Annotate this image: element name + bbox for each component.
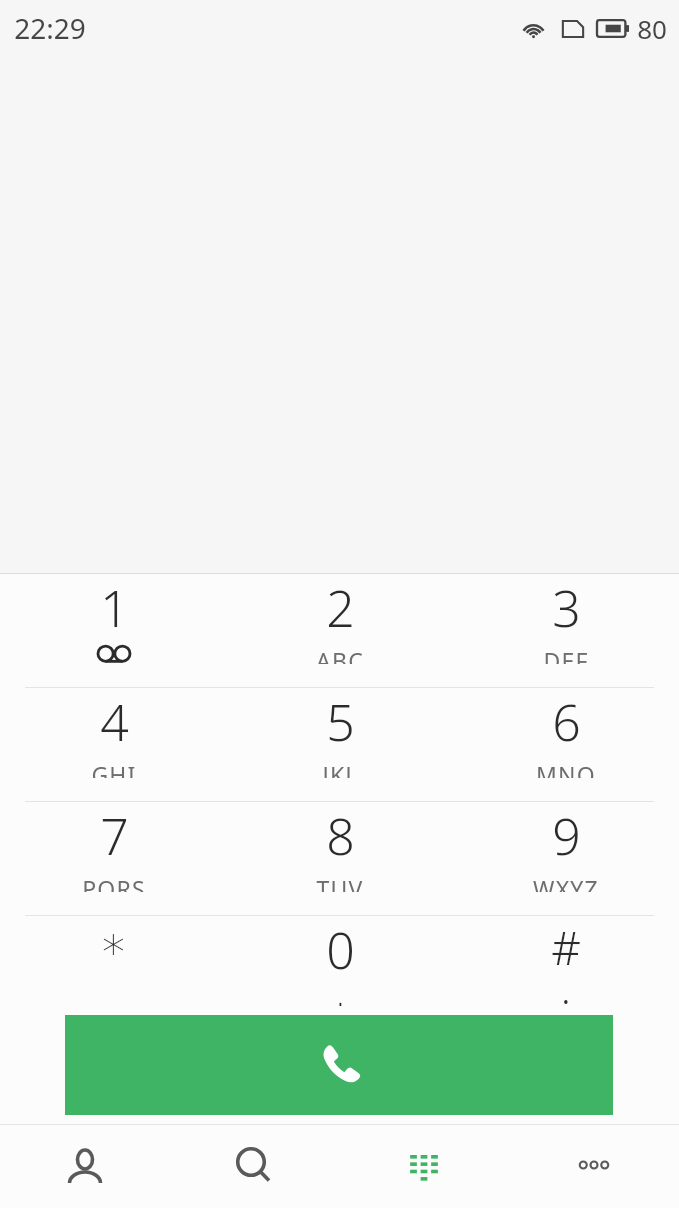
staticText: ;: [561, 979, 571, 1006]
staticText: 9: [552, 802, 581, 870]
button[interactable]: 7: [0, 802, 227, 892]
button[interactable]: 1: [0, 574, 227, 664]
staticText: 0: [326, 916, 355, 984]
button[interactable]: 8: [227, 802, 453, 892]
button[interactable]: Dialpad: [339, 1125, 509, 1208]
staticText: 3: [552, 574, 581, 642]
button[interactable]: Contacts: [0, 1125, 169, 1208]
button[interactable]: ∗: [0, 916, 227, 1006]
button[interactable]: 6: [453, 688, 679, 778]
staticText: 8: [326, 802, 355, 870]
staticText: PQRS: [82, 873, 146, 892]
staticText: ABC: [316, 645, 364, 664]
button[interactable]: 0: [227, 916, 453, 1006]
staticText: TUV: [316, 873, 364, 892]
button[interactable]: More options: [509, 1125, 679, 1208]
staticText: 80: [637, 11, 667, 46]
staticText: 2: [326, 574, 355, 642]
staticText: 22:29: [14, 9, 86, 47]
button[interactable]: 3: [453, 574, 679, 664]
button[interactable]: 5: [227, 688, 453, 778]
staticText: #: [551, 916, 581, 979]
button[interactable]: 9: [453, 802, 679, 892]
button[interactable]: 4: [0, 688, 227, 778]
button[interactable]: 2: [227, 574, 453, 664]
staticText: WXYZ: [533, 873, 599, 892]
button[interactable]: Search: [169, 1125, 339, 1208]
staticText: GHI: [91, 759, 137, 778]
button[interactable]: #: [453, 916, 679, 1006]
staticText: 7: [100, 802, 129, 870]
staticText: ∗: [99, 916, 128, 970]
staticText: MNO: [536, 759, 596, 778]
staticText: 6: [552, 688, 581, 756]
staticText: 5: [326, 688, 355, 756]
staticText: JKL: [322, 759, 359, 778]
staticText: DEF: [543, 645, 589, 664]
staticText: 4: [100, 688, 129, 756]
staticText: 1: [100, 574, 129, 642]
staticText: +: [329, 984, 352, 1006]
button[interactable]: Call: [65, 1015, 613, 1115]
